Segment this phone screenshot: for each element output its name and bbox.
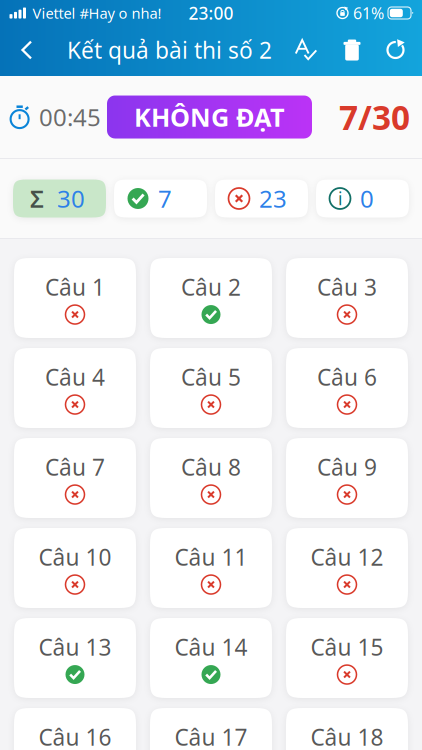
button[interactable]: Câu 16 — [14, 708, 136, 750]
button[interactable]: i — [316, 179, 409, 217]
staticText: 00:45 — [39, 101, 101, 133]
staticText: Câu 5 — [181, 362, 241, 392]
button[interactable]: Back — [5, 27, 49, 73]
button[interactable]: Retake test — [375, 27, 417, 73]
button[interactable]: Câu 5 — [150, 348, 272, 428]
button[interactable]: Review answers — [283, 27, 329, 73]
button[interactable]: Câu 8 — [150, 438, 272, 518]
staticText: KHÔNG ĐẠT — [134, 100, 285, 134]
button[interactable]: Câu 4 — [14, 348, 136, 428]
staticText: Câu 16 — [38, 722, 111, 750]
button[interactable]: Câu 15 — [286, 618, 408, 698]
staticText: Câu 12 — [310, 542, 383, 572]
button[interactable]: Câu 7 — [14, 438, 136, 518]
button[interactable]: Câu 12 — [286, 528, 408, 608]
button[interactable]: Câu 13 — [14, 618, 136, 698]
button[interactable]: Σ — [13, 179, 106, 217]
button[interactable]: KHÔNG ĐẠT — [107, 95, 312, 138]
button[interactable]: 7 — [114, 179, 207, 217]
staticText: Σ — [30, 183, 44, 214]
staticText: Câu 10 — [38, 542, 111, 572]
button[interactable]: Câu 2 — [150, 258, 272, 338]
staticText: Câu 2 — [181, 272, 241, 302]
button[interactable]: Câu 6 — [286, 348, 408, 428]
staticText: Câu 6 — [317, 362, 377, 392]
staticText: Câu 18 — [310, 722, 383, 750]
staticText: 23 — [259, 183, 287, 214]
button[interactable]: Delete result — [329, 27, 375, 73]
staticText: Câu 7 — [45, 452, 105, 482]
button[interactable]: Câu 1 — [14, 258, 136, 338]
staticText: 23:00 — [188, 1, 233, 24]
button[interactable]: Câu 17 — [150, 708, 272, 750]
staticText: Câu 8 — [181, 452, 241, 482]
staticText: i — [338, 187, 342, 210]
staticText: Câu 15 — [310, 632, 383, 662]
button[interactable]: Câu 10 — [14, 528, 136, 608]
button[interactable]: Câu 11 — [150, 528, 272, 608]
staticText: Câu 13 — [38, 632, 111, 662]
staticText: Viettel #Hay o nha! — [32, 3, 161, 23]
staticText: Câu 4 — [45, 362, 105, 392]
staticText: 30 — [57, 183, 85, 214]
button[interactable]: Câu 9 — [286, 438, 408, 518]
staticText: 7/30 — [339, 95, 410, 139]
staticText: Câu 11 — [174, 542, 247, 572]
staticText: Câu 17 — [174, 722, 247, 750]
staticText: Câu 14 — [174, 632, 247, 662]
staticText: Kết quả bài thi số 2 — [67, 35, 272, 65]
staticText: Câu 1 — [45, 272, 105, 302]
button[interactable]: Câu 14 — [150, 618, 272, 698]
button[interactable]: 23 — [215, 179, 308, 217]
button[interactable]: Câu 18 — [286, 708, 408, 750]
staticText: Câu 9 — [317, 452, 377, 482]
staticText: 61% — [353, 2, 384, 24]
staticText: Câu 3 — [317, 272, 377, 302]
staticText: 0 — [360, 183, 374, 214]
staticText: 7 — [158, 183, 172, 214]
button[interactable]: Câu 3 — [286, 258, 408, 338]
